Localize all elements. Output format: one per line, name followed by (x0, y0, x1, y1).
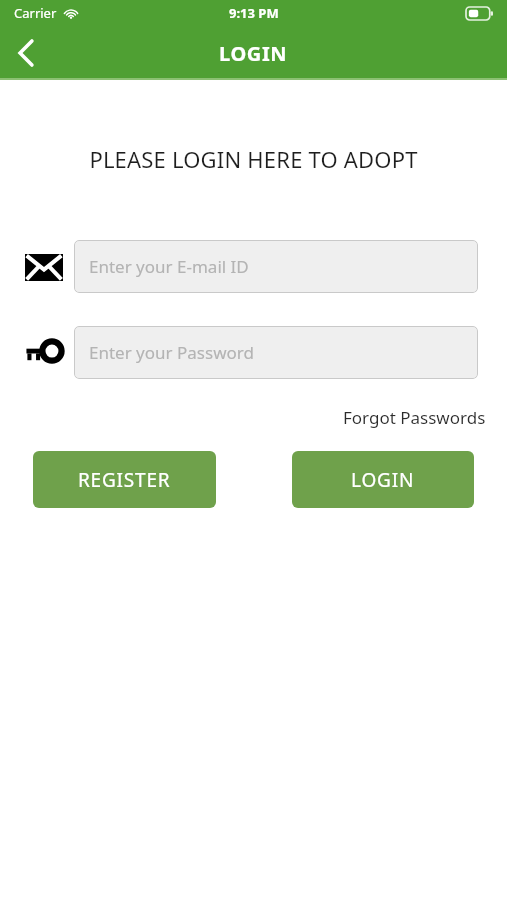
button[interactable]: Email (22, 245, 66, 289)
button[interactable]: REGISTER (33, 451, 216, 508)
button[interactable]: Enter your E-mail ID (74, 240, 478, 293)
staticText: REGISTER (78, 467, 171, 493)
staticText: PLEASE LOGIN HERE TO ADOPT (0, 144, 507, 174)
staticText: LOGIN (351, 467, 415, 493)
button[interactable]: Back (0, 27, 52, 79)
button[interactable]: Enter your Password (74, 326, 478, 379)
button[interactable]: LOGIN (292, 451, 474, 508)
button[interactable]: Forgot Passwords (341, 403, 488, 432)
staticText: Forgot Passwords (343, 406, 486, 429)
staticText: LOGIN (219, 40, 288, 67)
staticText: 9:13 PM (229, 4, 279, 22)
button[interactable]: Password (22, 331, 66, 375)
staticText: Enter your Password (89, 341, 254, 364)
staticText: Enter your E-mail ID (89, 255, 249, 278)
staticText: Carrier (14, 4, 57, 22)
